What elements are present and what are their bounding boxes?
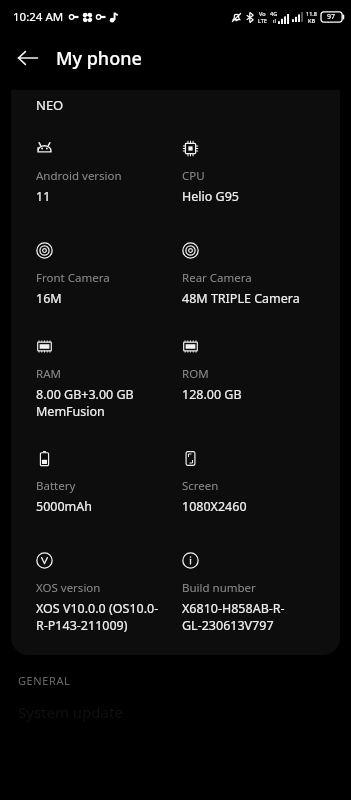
- button[interactable]: Android version: [36, 140, 168, 205]
- staticText: XOS version: [36, 580, 101, 596]
- staticText: KB: [308, 17, 315, 24]
- button[interactable]: Front camera: [36, 242, 168, 307]
- staticText: 8.00 GB+3.00 GB MemFusion: [36, 386, 168, 419]
- staticText: RAM: [36, 366, 61, 382]
- staticText: CPU: [182, 168, 205, 184]
- staticText: Android version: [36, 168, 122, 184]
- staticText: My phone: [56, 46, 142, 71]
- button[interactable]: Build number: [182, 552, 324, 633]
- staticText: 10:24 AM: [13, 9, 64, 25]
- staticText: XOS V10.0.0 (OS10.0-R-P143-211009): [36, 600, 168, 633]
- button[interactable]: Back: [8, 38, 48, 78]
- staticText: ıl: [273, 17, 276, 24]
- staticText: Vo: [259, 10, 266, 17]
- staticText: X6810-H858AB-R-GL-230613V797: [182, 600, 324, 633]
- staticText: Rear Camera: [182, 270, 252, 286]
- staticText: Build number: [182, 580, 256, 596]
- staticText: Battery: [36, 478, 76, 494]
- staticText: System update: [18, 702, 123, 722]
- staticText: 97: [327, 12, 336, 22]
- staticText: 1080X2460: [182, 498, 247, 515]
- button[interactable]: XOS version: [36, 552, 168, 633]
- staticText: 128.00 GB: [182, 386, 242, 403]
- staticText: 11: [36, 188, 51, 205]
- staticText: LTE: [258, 17, 267, 24]
- staticText: GENERAL: [18, 673, 71, 688]
- staticText: NEO: [36, 96, 64, 114]
- button[interactable]: Rear camera: [182, 242, 324, 307]
- staticText: 5000mAh: [36, 498, 93, 515]
- button[interactable]: ROM: [182, 338, 324, 403]
- staticText: Helio G95: [182, 188, 239, 205]
- staticText: Front Camera: [36, 270, 110, 286]
- staticText: 16M: [36, 290, 62, 307]
- button[interactable]: Screen: [182, 450, 324, 515]
- staticText: 4G: [270, 10, 278, 17]
- staticText: 11.8: [306, 10, 317, 17]
- staticText: Screen: [182, 478, 219, 494]
- staticText: ROM: [182, 366, 209, 382]
- button[interactable]: Battery: [36, 450, 168, 515]
- button[interactable]: CPU: [182, 140, 324, 205]
- button[interactable]: RAM: [36, 338, 168, 419]
- staticText: 48M TRIPLE Camera: [182, 290, 300, 307]
